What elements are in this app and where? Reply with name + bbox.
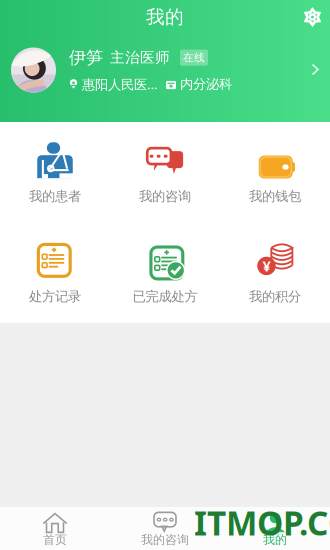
button[interactable]: 伊笋 bbox=[0, 34, 330, 122]
staticText: 我的 bbox=[146, 5, 184, 28]
staticText: ITMOP.COM bbox=[194, 500, 330, 545]
button[interactable]: 首页 bbox=[0, 506, 110, 549]
button[interactable]: Settings bbox=[304, 8, 330, 25]
staticText: 我的咨询 bbox=[141, 532, 189, 547]
staticText: 在线 bbox=[183, 51, 205, 64]
button[interactable]: 我的咨询 bbox=[110, 506, 220, 549]
staticText: 已完成处方 bbox=[132, 288, 197, 305]
staticText: 我的咨询 bbox=[139, 188, 191, 204]
staticText: 首页 bbox=[43, 532, 67, 547]
staticText: 伊笋 bbox=[69, 47, 103, 68]
staticText: 我的钱包 bbox=[249, 188, 301, 204]
button[interactable]: 已完成处方 bbox=[110, 222, 220, 323]
staticText: 惠阳人民医… bbox=[82, 75, 158, 93]
button[interactable]: 我的咨询 bbox=[110, 122, 220, 222]
staticText: 内分泌科 bbox=[180, 76, 232, 92]
button[interactable]: 我的患者 bbox=[0, 122, 110, 222]
staticText: ¥ bbox=[262, 256, 270, 276]
button[interactable]: ¥ bbox=[220, 222, 330, 323]
button[interactable]: 我的 bbox=[220, 506, 330, 549]
staticText: 我的 bbox=[263, 532, 287, 547]
staticText: 我的患者 bbox=[29, 188, 81, 204]
staticText: 处方记录 bbox=[29, 288, 81, 305]
button[interactable]: 处方记录 bbox=[0, 222, 110, 323]
button[interactable]: 我的钱包 bbox=[220, 122, 330, 222]
staticText: 主治医师 bbox=[110, 49, 170, 67]
staticText: 我的积分 bbox=[249, 288, 301, 305]
